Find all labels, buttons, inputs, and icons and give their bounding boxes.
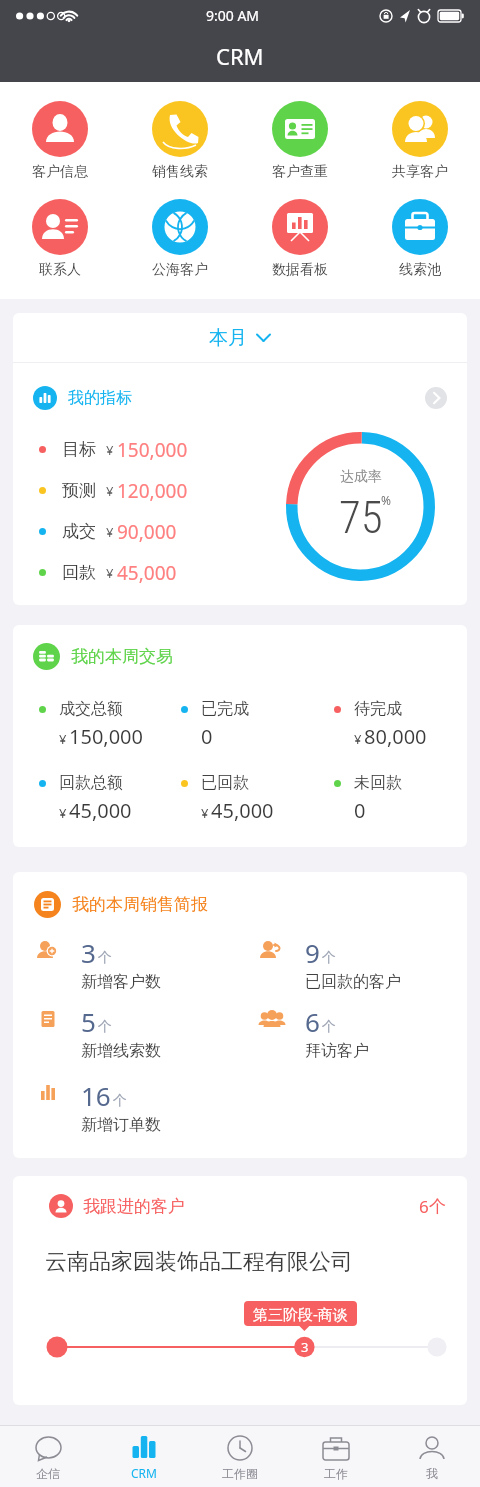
staticText: 回款总额 (59, 773, 123, 793)
button[interactable]: 本月 (13, 313, 467, 362)
staticText: 90,000 (117, 519, 177, 545)
staticText: 第三阶段-商谈 (253, 1304, 348, 1324)
staticText: 个 (113, 1092, 127, 1110)
button[interactable]: CRM (96, 1426, 192, 1487)
staticText: 未回款 (354, 773, 402, 793)
staticText: 75 (339, 491, 383, 544)
staticText: ¥ (201, 804, 209, 822)
staticText: 本月 (209, 326, 247, 350)
staticText: 45,000 (211, 797, 274, 824)
staticText: 9 (305, 935, 320, 970)
staticText: 工作圈 (222, 1466, 258, 1481)
staticText: ¥ (59, 730, 67, 748)
staticText: 6 (419, 1195, 429, 1218)
button[interactable]: 公海客户 (120, 199, 240, 279)
staticText: 线索池 (399, 261, 441, 279)
staticText: ¥ (106, 523, 114, 541)
staticText: 我的指标 (68, 388, 132, 408)
staticText: 120,000 (117, 478, 188, 504)
staticText: ¥ (106, 564, 114, 582)
staticText: 新增线索数 (81, 1041, 161, 1061)
staticText: 工作 (324, 1466, 348, 1481)
staticText: % (381, 492, 391, 508)
staticText: 我的本周销售简报 (72, 894, 208, 915)
staticText: 拜访客户 (305, 1041, 369, 1061)
button[interactable]: 客户信息 (0, 101, 120, 181)
staticText: 已回款的客户 (305, 972, 401, 992)
button[interactable]: 线索池 (360, 199, 480, 279)
button[interactable]: 企信 (0, 1426, 96, 1487)
button[interactable]: 数据看板 (240, 199, 360, 279)
button[interactable]: 销售线索 (120, 101, 240, 181)
staticText: 云南品家园装饰品工程有限公司 (45, 1248, 353, 1276)
staticText: 新增订单数 (81, 1115, 161, 1135)
staticText: 个 (429, 1196, 446, 1217)
staticText: 个 (98, 949, 112, 967)
staticText: ¥ (106, 482, 114, 500)
staticText: 已回款 (201, 773, 249, 793)
button[interactable]: 我 (384, 1426, 480, 1487)
button[interactable]: More (425, 387, 447, 409)
staticText: 9:00 AM (206, 6, 260, 25)
staticText: 个 (322, 1018, 336, 1036)
staticText: 45,000 (117, 560, 177, 586)
button[interactable]: 工作 (288, 1426, 384, 1487)
staticText: 150,000 (117, 437, 188, 463)
staticText: 达成率 (340, 468, 382, 486)
staticText: 成交总额 (59, 699, 123, 719)
staticText: 预测 (62, 480, 96, 501)
staticText: 目标 (62, 439, 96, 460)
staticText: 我的本周交易 (71, 646, 173, 667)
staticText: 我跟进的客户 (83, 1196, 185, 1217)
staticText: 6 (305, 1004, 320, 1039)
staticText: CRM (216, 41, 264, 71)
staticText: CRM (131, 1465, 157, 1481)
button[interactable]: 共享客户 (360, 101, 480, 181)
button[interactable]: 客户查重 (240, 101, 360, 181)
staticText: 新增客户数 (81, 972, 161, 992)
staticText: 销售线索 (152, 163, 208, 181)
button[interactable]: 工作圈 (192, 1426, 288, 1487)
staticText: 回款 (62, 562, 96, 583)
staticText: 成交 (62, 521, 96, 542)
staticText: 0 (354, 797, 366, 824)
staticText: 150,000 (69, 723, 143, 750)
staticText: 80,000 (364, 723, 427, 750)
staticText: 3 (301, 1338, 309, 1356)
staticText: 共享客户 (392, 163, 448, 181)
staticText: 数据看板 (272, 261, 328, 279)
staticText: ¥ (59, 804, 67, 822)
staticText: 0 (201, 723, 213, 750)
staticText: 45,000 (69, 797, 132, 824)
button[interactable]: 联系人 (0, 199, 120, 279)
staticText: 待完成 (354, 699, 402, 719)
staticText: 已完成 (201, 699, 249, 719)
staticText: 联系人 (39, 261, 81, 279)
staticText: ¥ (106, 441, 114, 459)
staticText: 我 (426, 1466, 438, 1481)
staticText: 5 (81, 1004, 96, 1039)
staticText: 16 (81, 1078, 111, 1113)
staticText: 个 (322, 949, 336, 967)
staticText: 3 (81, 935, 96, 970)
staticText: 企信 (36, 1466, 60, 1481)
staticText: 客户查重 (272, 163, 328, 181)
staticText: 个 (98, 1018, 112, 1036)
staticText: ¥ (354, 730, 362, 748)
staticText: 公海客户 (152, 261, 208, 279)
staticText: 客户信息 (32, 163, 88, 181)
